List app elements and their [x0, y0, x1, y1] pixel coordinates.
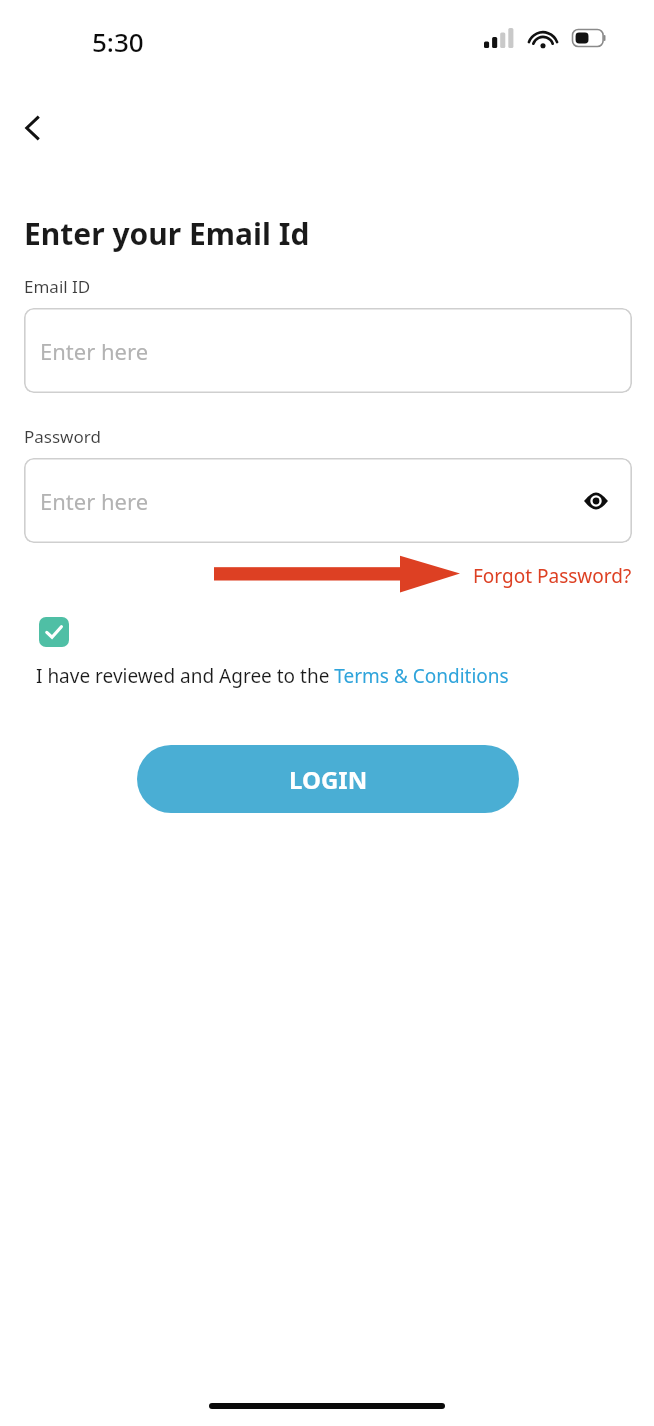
button[interactable]: Forgot Password? [430, 558, 632, 594]
button[interactable]: Back [8, 103, 58, 153]
staticText: Enter here [40, 486, 149, 516]
staticText: Enter your Email Id [24, 213, 310, 254]
staticText: 5:30 [92, 24, 144, 59]
button[interactable]: Show password [574, 479, 618, 523]
button[interactable]: I have reviewed and Agree to the Terms &… [36, 658, 509, 694]
button[interactable]: Enter here [24, 308, 632, 393]
staticText: Email ID [24, 275, 91, 298]
staticText: Password [24, 425, 101, 448]
staticText: LOGIN [289, 763, 368, 796]
staticText: I have reviewed and Agree to the Terms &… [36, 663, 509, 689]
staticText: Forgot Password? [473, 563, 632, 589]
button[interactable]: Agree to terms checkbox [39, 617, 69, 647]
button[interactable]: Enter here [24, 458, 632, 543]
staticText: Enter here [40, 336, 149, 366]
button[interactable]: LOGIN [137, 745, 519, 813]
